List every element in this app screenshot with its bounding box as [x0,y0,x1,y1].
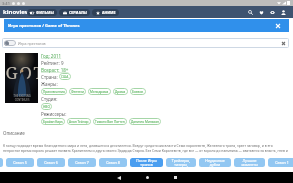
button[interactable]: Алан Тейлор [67,118,91,125]
button[interactable]: После Игры тронов [130,158,163,167]
staticText: Брайан Кирк [43,120,63,124]
staticText: Режиссеры: [41,111,67,117]
button[interactable]: Мелодрама [88,88,111,95]
staticText: Тимоти Ван Паттен [95,120,125,124]
button[interactable]: Сезон 8 [99,158,127,167]
button[interactable]: США [59,73,71,80]
button[interactable]: Close [275,23,281,29]
button[interactable]: Возраст: 18+ [41,67,69,73]
button[interactable]: Favorites [257,8,266,17]
staticText: Трейлеры, тизеры, промо [167,158,195,167]
button[interactable]: Search [246,8,255,17]
button[interactable]: АНИМЕ [92,9,119,16]
button[interactable]: Profile [279,8,288,17]
button[interactable]: HBO [41,103,52,110]
button[interactable]: Драма [113,88,128,95]
staticText: Мелодрама [90,90,109,94]
staticText: ФИЛЬМЫ [36,10,54,15]
staticText: Приключения [43,90,65,94]
staticText: Фэнтези [71,90,84,94]
staticText: Сезон 7 [75,160,89,165]
staticText: К концу подходит время благодатного мира… [3,143,290,153]
staticText: Описание [3,130,25,136]
button[interactable]: Фэнтези [69,88,86,95]
button[interactable]: Брайан Кирк [41,118,65,125]
button[interactable]: Неудачные дубли [199,158,231,167]
staticText: Жанры: [41,81,58,87]
staticText: Неудачные дубли [200,158,230,167]
button[interactable]: Home [143,173,152,182]
button[interactable]: Лучшие моменты [234,158,265,167]
button[interactable]: ФИЛЬМЫ [27,9,57,16]
button[interactable]: kinoview [3,8,30,16]
staticText: Алан Тейлор [69,120,89,124]
button[interactable]: Сезон 5 [6,158,34,167]
button[interactable]: GOT [5,53,38,103]
button[interactable]: Боевик [130,88,146,95]
button[interactable]: Watched [268,8,277,17]
staticText: Даниэль Минахан [131,120,159,124]
staticText: Студия: [41,96,58,102]
button[interactable]: Clear [280,40,286,46]
staticText: Страна: [41,74,59,80]
button[interactable]: Трейлеры, тизеры, промо [166,158,196,167]
button[interactable]: Игра престолов [2,38,289,48]
button[interactable]: Сезон 4 [0,158,3,167]
staticText: Рейтинг: 9 [41,60,64,66]
staticText: После Игры тронов [131,158,162,167]
button[interactable] [4,40,16,46]
button[interactable]: Сезон 7 [68,158,96,167]
staticText: СЕРИАЛЫ [69,10,87,15]
staticText: HBO [43,105,50,109]
staticText: Драма [115,90,126,94]
staticText: Сезон 1 [275,160,289,165]
staticText: Сезон 5 [13,160,27,165]
staticText: Сезон 6 [44,160,58,165]
button[interactable]: Тимоти Ван Паттен [93,118,127,125]
button[interactable]: Сезон 6 [37,158,65,167]
button[interactable]: СЕРИАЛЫ [59,9,90,16]
button[interactable]: Игра престолов / Game of Thrones [4,19,289,32]
staticText: Лучшие моменты [235,158,264,167]
button[interactable]: Год: 2011 [41,53,62,59]
staticText: Сезон 8 [106,160,120,165]
staticText: 3:41 [2,1,10,6]
staticText: GOT [5,61,38,84]
staticText: THE EXCITING CONTINUES [13,94,31,101]
staticText: Игра престолов [18,41,46,46]
button[interactable]: Recents [171,173,180,182]
button[interactable]: Приключения [41,88,67,95]
staticText: АНИМЕ [102,10,116,15]
staticText: Игра престолов / Game of Thrones [8,23,80,29]
button[interactable]: Даниэль Минахан [129,118,161,125]
button[interactable]: Сезон 1 [268,158,293,167]
button[interactable]: Back [114,173,123,182]
staticText: США [61,75,69,79]
staticText: Боевик [132,90,144,94]
